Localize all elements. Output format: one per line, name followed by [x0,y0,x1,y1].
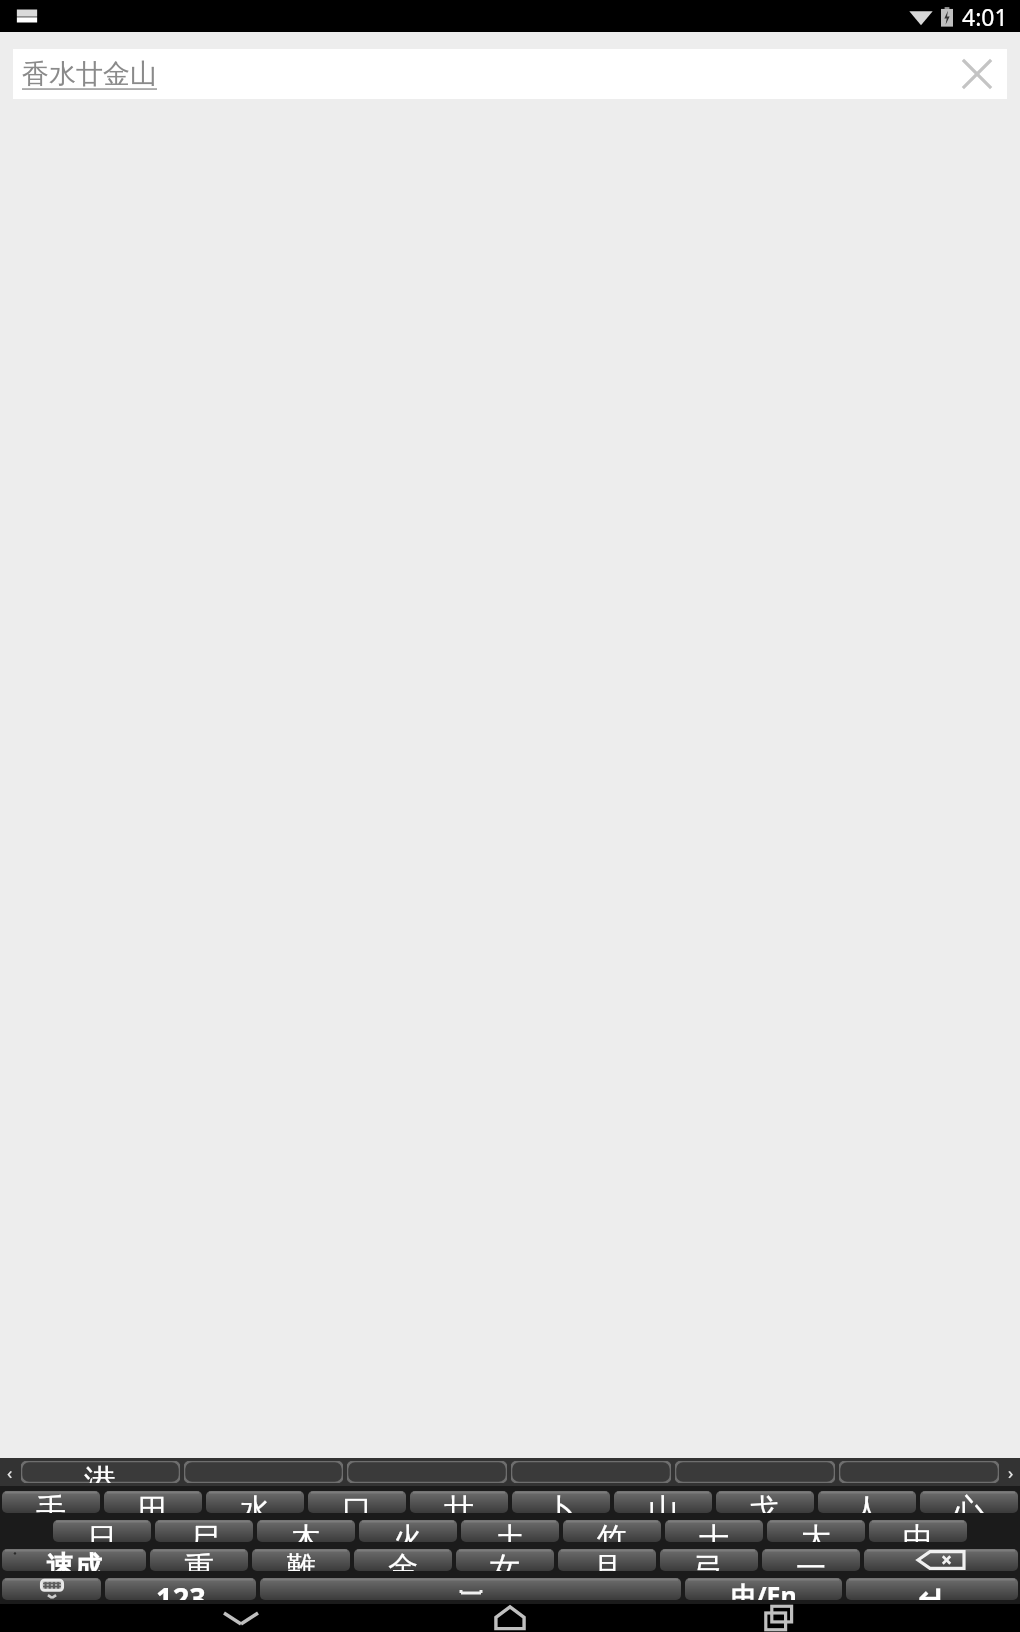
staticText: ‹ [7,1461,13,1484]
button[interactable]: 中 [869,1520,967,1542]
staticText: 口 [342,1491,372,1513]
staticText: 廿 [444,1491,474,1513]
staticText: 竹 [597,1520,627,1542]
button[interactable]: Back [213,1604,269,1632]
button[interactable]: 心 [920,1491,1018,1513]
button[interactable]: More candidates [1001,1458,1020,1486]
button[interactable]: 123 [105,1578,256,1600]
staticText: › [1008,1461,1014,1484]
staticText: 月 [592,1549,622,1571]
staticText: ↵ [918,1578,946,1600]
button[interactable]: 廿 [410,1491,508,1513]
button[interactable]: Clear text [956,53,998,95]
staticText: 金 [388,1549,418,1571]
button[interactable]: 戈 [716,1491,814,1513]
button[interactable]: 尸 [155,1520,253,1542]
staticText: 戈 [750,1491,780,1513]
staticText: 十 [699,1520,729,1542]
staticText: 123 [156,1578,206,1600]
button[interactable]: 金 [354,1549,452,1571]
staticText: 日 [87,1520,117,1542]
staticText: 中/En [731,1578,797,1600]
button[interactable] [839,1461,999,1483]
button[interactable]: 火 [359,1520,457,1542]
button[interactable]: 速成 [2,1549,146,1571]
button[interactable]: Recent apps [751,1604,807,1632]
button[interactable]: 田 [104,1491,202,1513]
staticText: 女 [490,1549,520,1571]
button[interactable]: Enter [846,1578,1018,1600]
button[interactable]: 港 [21,1461,180,1483]
staticText: 水 [240,1491,270,1513]
staticText: 港 [84,1461,117,1483]
staticText: 火 [393,1520,423,1542]
button[interactable]: 口 [308,1491,406,1513]
button[interactable]: 香水廿金山 [13,49,1007,99]
staticText: 重 [184,1549,214,1571]
staticText: 人 [852,1491,882,1513]
button[interactable]: 中/En [685,1578,842,1600]
staticText: 大 [801,1520,831,1542]
button[interactable]: 重 [150,1549,248,1571]
staticText: 4:01 [962,1,1008,32]
staticText: 難 [286,1549,316,1571]
button[interactable] [347,1461,507,1483]
button[interactable]: 月 [558,1549,656,1571]
button[interactable]: 水 [206,1491,304,1513]
button[interactable]: Space [260,1578,681,1600]
staticText: 香水廿金山 [22,57,157,91]
button[interactable] [511,1461,671,1483]
button[interactable]: 土 [461,1520,559,1542]
button[interactable]: Hide keyboard [2,1578,101,1600]
button[interactable]: 山 [614,1491,712,1513]
button[interactable]: 十 [665,1520,763,1542]
button[interactable]: 木 [257,1520,355,1542]
staticText: 尸 [189,1520,219,1542]
staticText: 木 [291,1520,321,1542]
staticText: 弓 [694,1549,724,1571]
button[interactable]: 一 [762,1549,860,1571]
button[interactable]: Previous candidates [0,1458,19,1486]
staticText: 土 [495,1520,525,1542]
staticText: 一 [796,1549,826,1571]
button[interactable]: 日 [53,1520,151,1542]
staticText: 速成 [46,1549,102,1571]
staticText: 山 [648,1491,678,1513]
staticText: 中 [903,1520,933,1542]
button[interactable]: 卜 [512,1491,610,1513]
button[interactable]: 難 [252,1549,350,1571]
button[interactable]: 人 [818,1491,916,1513]
button[interactable]: 女 [456,1549,554,1571]
button[interactable]: 手 [2,1491,100,1513]
staticText: 田 [138,1491,168,1513]
staticText: 卜 [546,1491,576,1513]
button[interactable]: Backspace [864,1549,1018,1571]
button[interactable]: 弓 [660,1549,758,1571]
button[interactable] [184,1461,343,1483]
button[interactable]: Home [482,1604,538,1632]
staticText: 手 [36,1491,66,1513]
button[interactable]: 大 [767,1520,865,1542]
button[interactable] [675,1461,835,1483]
staticText: 心 [954,1491,984,1513]
button[interactable]: 竹 [563,1520,661,1542]
